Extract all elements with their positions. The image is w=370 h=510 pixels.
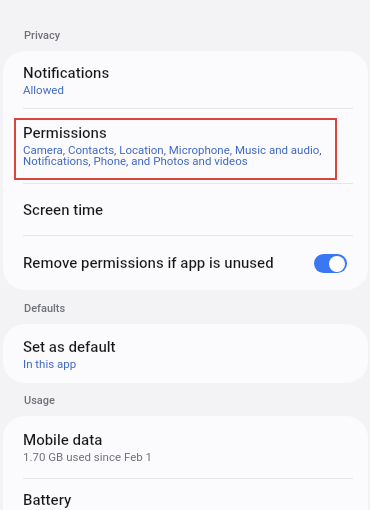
button[interactable]: Set as default <box>3 324 368 383</box>
button[interactable]: Notifications <box>3 51 368 108</box>
button[interactable]: Battery <box>3 479 368 510</box>
staticText: Defaults <box>24 302 66 315</box>
staticText: Screen time <box>23 201 104 219</box>
staticText: 1.70 GB used since Feb 1 <box>23 450 152 463</box>
staticText: Usage <box>24 394 55 407</box>
staticText: Mobile data <box>23 431 103 449</box>
staticText: Notifications <box>23 64 110 82</box>
staticText: Battery <box>23 491 72 509</box>
staticText: Remove permissions if app is unused <box>23 254 274 272</box>
button[interactable]: Permissions <box>3 109 368 183</box>
staticText: Permissions <box>23 124 107 142</box>
staticText: Set as default <box>23 338 116 356</box>
staticText: Camera, Contacts, Location, Microphone, … <box>23 143 322 168</box>
button[interactable]: Screen time <box>3 184 368 235</box>
button[interactable]: Remove permissions if app is unused <box>3 236 368 290</box>
staticText: In this app <box>23 357 77 370</box>
staticText: Allowed <box>23 83 64 96</box>
button[interactable]: Mobile data <box>3 416 368 478</box>
button[interactable]: Toggle Remove permissions if app is unus… <box>314 254 347 273</box>
staticText: Privacy <box>24 29 61 42</box>
